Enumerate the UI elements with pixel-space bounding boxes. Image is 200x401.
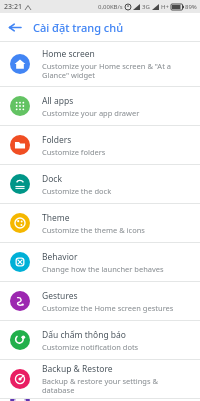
staticText: Customize notification dots bbox=[42, 342, 139, 352]
staticText: Behavior bbox=[42, 251, 78, 263]
staticText: Customize folders bbox=[42, 147, 106, 157]
staticText: Dấu chấm thông báo bbox=[42, 329, 126, 341]
staticText: Dock bbox=[42, 173, 62, 185]
staticText: Customize the dock bbox=[42, 186, 112, 196]
staticText: Theme bbox=[42, 212, 70, 224]
staticText: Backup & Restore bbox=[42, 363, 113, 375]
staticText: All apps bbox=[42, 95, 74, 107]
staticText: Gestures bbox=[42, 290, 78, 302]
button[interactable]: Backup & Restore bbox=[0, 360, 200, 398]
button[interactable]: Dấu chấm thông báo bbox=[0, 321, 200, 359]
button[interactable]: Back bbox=[0, 13, 28, 41]
button[interactable]: Dock bbox=[0, 165, 200, 203]
staticText: H+ bbox=[161, 3, 169, 11]
staticText: Customize the Home screen gestures bbox=[42, 303, 174, 313]
staticText: 89% bbox=[185, 3, 197, 11]
staticText: Customize your Home screen & "At a Glanc… bbox=[42, 61, 190, 80]
button[interactable]: Debug bbox=[0, 399, 200, 401]
staticText: Cài đặt trang chủ bbox=[33, 20, 124, 35]
staticText: Change how the launcher behaves bbox=[42, 264, 164, 274]
staticText: 3G bbox=[142, 3, 150, 11]
staticText: Backup & restore your settings & databas… bbox=[42, 376, 190, 395]
button[interactable]: Folders bbox=[0, 126, 200, 164]
button[interactable]: All apps bbox=[0, 87, 200, 125]
staticText: Folders bbox=[42, 134, 72, 146]
button[interactable]: Home screen bbox=[0, 42, 200, 86]
staticText: Customize the theme & icons bbox=[42, 225, 145, 235]
button[interactable]: Gestures bbox=[0, 282, 200, 320]
button[interactable]: Theme bbox=[0, 204, 200, 242]
staticText: Customize your app drawer bbox=[42, 108, 140, 118]
staticText: 0,00KB/s bbox=[98, 3, 123, 11]
staticText: Home screen bbox=[42, 48, 95, 60]
staticText: 23:21 bbox=[4, 2, 22, 12]
button[interactable]: Behavior bbox=[0, 243, 200, 281]
